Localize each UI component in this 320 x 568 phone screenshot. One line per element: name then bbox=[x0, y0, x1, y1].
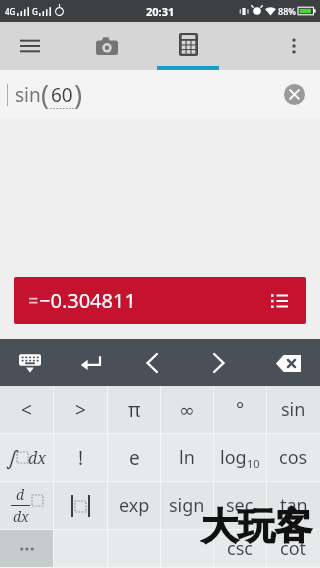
staticText: ) bbox=[74, 76, 83, 113]
staticText: 20:31 bbox=[146, 4, 175, 19]
staticText: ! bbox=[78, 445, 84, 471]
staticText: 60 bbox=[51, 82, 73, 108]
staticText: d bbox=[16, 485, 25, 504]
button[interactable]: Hide keyboard bbox=[10, 343, 50, 383]
button[interactable]: ° bbox=[214, 386, 266, 433]
button[interactable]: ! bbox=[54, 434, 107, 481]
button[interactable]: log bbox=[214, 434, 266, 481]
button[interactable]: Clear bbox=[279, 79, 309, 109]
button[interactable]: Calculator bbox=[157, 22, 219, 70]
button[interactable]: Backspace bbox=[266, 341, 310, 385]
button[interactable]: e bbox=[108, 434, 160, 481]
staticText: π bbox=[128, 397, 141, 423]
staticText: 大玩客 bbox=[201, 503, 312, 550]
staticText: G bbox=[32, 6, 38, 17]
button[interactable]: cot bbox=[267, 530, 320, 567]
staticText: cot bbox=[280, 536, 307, 561]
button[interactable]: Camera bbox=[83, 22, 131, 70]
staticText: log bbox=[220, 445, 247, 470]
staticText: sign bbox=[169, 493, 205, 518]
button[interactable] bbox=[54, 482, 107, 529]
button[interactable]: sin bbox=[0, 70, 320, 118]
staticText: cos bbox=[279, 445, 308, 470]
staticText: ° bbox=[236, 397, 245, 423]
staticText: > bbox=[75, 397, 86, 423]
staticText: csc bbox=[227, 536, 253, 561]
button[interactable]: More options bbox=[272, 24, 316, 68]
button[interactable]: Move left bbox=[132, 343, 172, 383]
button[interactable] bbox=[0, 530, 53, 567]
button[interactable]: ln bbox=[161, 434, 213, 481]
staticText: tan bbox=[280, 493, 308, 518]
staticText: ∞ bbox=[179, 399, 195, 421]
staticText: sin bbox=[281, 397, 306, 422]
staticText: < bbox=[21, 397, 32, 423]
staticText: sin bbox=[15, 82, 41, 108]
button[interactable]: History bbox=[262, 284, 296, 318]
button[interactable]: cos bbox=[267, 434, 320, 481]
button[interactable]: d bbox=[0, 482, 53, 529]
staticText: exp bbox=[119, 493, 150, 518]
button[interactable]: = bbox=[14, 277, 306, 324]
button[interactable]: ∫ bbox=[0, 434, 53, 481]
staticText: ( bbox=[41, 76, 50, 113]
staticText: sec bbox=[226, 493, 254, 518]
staticText: 4G bbox=[5, 6, 16, 17]
button[interactable]: Key bbox=[161, 530, 213, 567]
staticText: ∫ bbox=[6, 446, 17, 469]
button[interactable]: sign bbox=[161, 482, 213, 529]
button[interactable]: > bbox=[54, 386, 107, 433]
button[interactable]: sin bbox=[267, 386, 320, 433]
button[interactable]: exp bbox=[108, 482, 160, 529]
staticText: 88% bbox=[278, 5, 296, 17]
button[interactable]: Move right bbox=[198, 343, 238, 383]
staticText: dx bbox=[28, 447, 47, 469]
button[interactable]: tan bbox=[267, 482, 320, 529]
staticText: e bbox=[129, 445, 140, 471]
button[interactable]: < bbox=[0, 386, 53, 433]
button[interactable]: Menu bbox=[8, 24, 52, 68]
button[interactable]: π bbox=[108, 386, 160, 433]
button[interactable]: csc bbox=[214, 530, 266, 567]
staticText: ln bbox=[179, 445, 195, 470]
staticText: dx bbox=[13, 507, 29, 526]
button[interactable]: Enter bbox=[70, 343, 110, 383]
staticText: = bbox=[28, 288, 39, 313]
staticText: −0.304811 bbox=[39, 287, 136, 314]
button[interactable]: ∞ bbox=[161, 386, 213, 433]
staticText: 10 bbox=[247, 456, 260, 471]
button[interactable]: sec bbox=[214, 482, 266, 529]
